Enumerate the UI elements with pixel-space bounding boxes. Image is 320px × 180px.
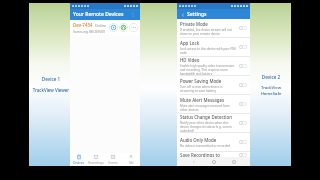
staticText: Your Remote Devices — [73, 11, 124, 18]
staticText: Lock access to this device with your PIN… — [180, 47, 237, 55]
staticText: Audio Only Mode — [180, 137, 217, 143]
staticText: Samsung SM-G9500 — [73, 29, 105, 34]
button[interactable]: Private Mode — [177, 19, 250, 37]
button[interactable]: Back — [190, 158, 197, 165]
button[interactable]: Save Recordings to Internal Storage — [177, 152, 250, 157]
staticText: Save Recordings to Internal Storage — [180, 152, 237, 157]
staticText: TrackView Viewer — [31, 87, 71, 93]
staticText: If enabled, live device stream will not … — [180, 28, 237, 36]
button[interactable]: Device action — [119, 23, 128, 32]
button[interactable]: App Lock — [177, 38, 250, 56]
staticText: Dev-7454 — [73, 22, 93, 28]
button[interactable]: Device action — [109, 23, 118, 32]
staticText: Mute alert messages received from other … — [180, 104, 237, 112]
staticText: Turn off screen when device is streaming… — [180, 85, 237, 93]
button[interactable]: Home — [210, 158, 217, 165]
button[interactable]: Back — [179, 11, 186, 18]
staticText: Status Change Detection — [180, 114, 232, 120]
staticText: Devices — [73, 161, 84, 165]
staticText: No video is transmitted or recorded — [180, 144, 231, 148]
staticText: Settings — [187, 11, 207, 18]
staticText: Recordings — [88, 161, 104, 165]
button[interactable]: Audio Only Mode — [177, 133, 250, 151]
button[interactable]: Me — [122, 153, 140, 166]
button[interactable]: Power Saving Mode — [177, 76, 250, 94]
button[interactable]: HD Video — [177, 57, 250, 75]
button[interactable]: More options — [129, 11, 137, 19]
staticText: HD Video — [180, 57, 200, 63]
button[interactable]: Recordings — [87, 153, 104, 166]
staticText: Events — [108, 161, 118, 165]
button[interactable]: Device action — [129, 23, 138, 32]
button[interactable]: Mute Alert Messages — [177, 95, 250, 113]
button[interactable]: Status Change Detection — [177, 114, 250, 132]
staticText: Enable high quality video transmission a… — [180, 64, 237, 75]
staticText: Device 1 — [31, 76, 71, 82]
staticText: Notify your other device when this devic… — [180, 121, 237, 132]
button[interactable]: Recents — [230, 158, 237, 165]
staticText: Power Saving Mode — [180, 78, 222, 84]
staticText: TrackView HomeSafe — [251, 85, 291, 96]
staticText: Mute Alert Messages — [180, 97, 225, 103]
staticText: Private Mode — [180, 21, 208, 27]
button[interactable]: Events — [104, 153, 122, 166]
staticText: App Lock — [180, 40, 200, 46]
staticText: Me — [129, 161, 134, 165]
button[interactable]: Dev-7454 — [70, 20, 140, 35]
staticText: Device 2 — [251, 74, 291, 80]
button[interactable]: Devices — [70, 153, 87, 166]
staticText: Online — [95, 23, 107, 28]
